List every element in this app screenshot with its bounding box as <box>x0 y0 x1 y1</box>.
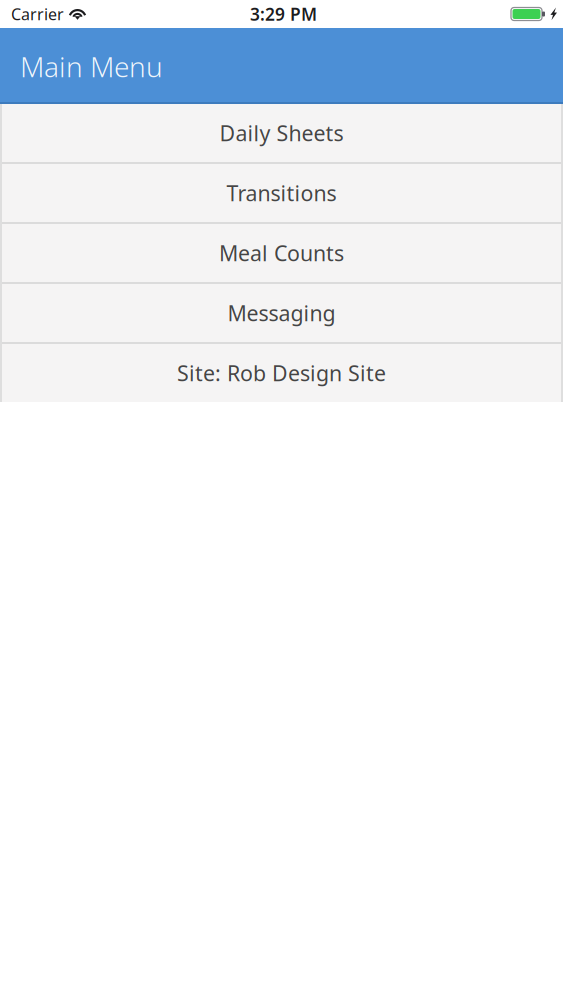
staticText: Site: Rob Design Site <box>177 359 386 387</box>
staticText: Messaging <box>227 299 335 327</box>
staticText: Carrier <box>11 3 64 25</box>
button[interactable]: Site: Rob Design Site <box>0 344 563 402</box>
staticText: 3:29 PM <box>250 2 317 25</box>
staticText: Daily Sheets <box>219 119 343 147</box>
staticText: Meal Counts <box>219 239 344 267</box>
staticText: Main Menu <box>20 48 163 85</box>
staticText: Transitions <box>226 179 336 207</box>
button[interactable]: Daily Sheets <box>0 104 563 164</box>
button[interactable]: Transitions <box>0 164 563 224</box>
button[interactable]: Messaging <box>0 284 563 344</box>
button[interactable]: Meal Counts <box>0 224 563 284</box>
